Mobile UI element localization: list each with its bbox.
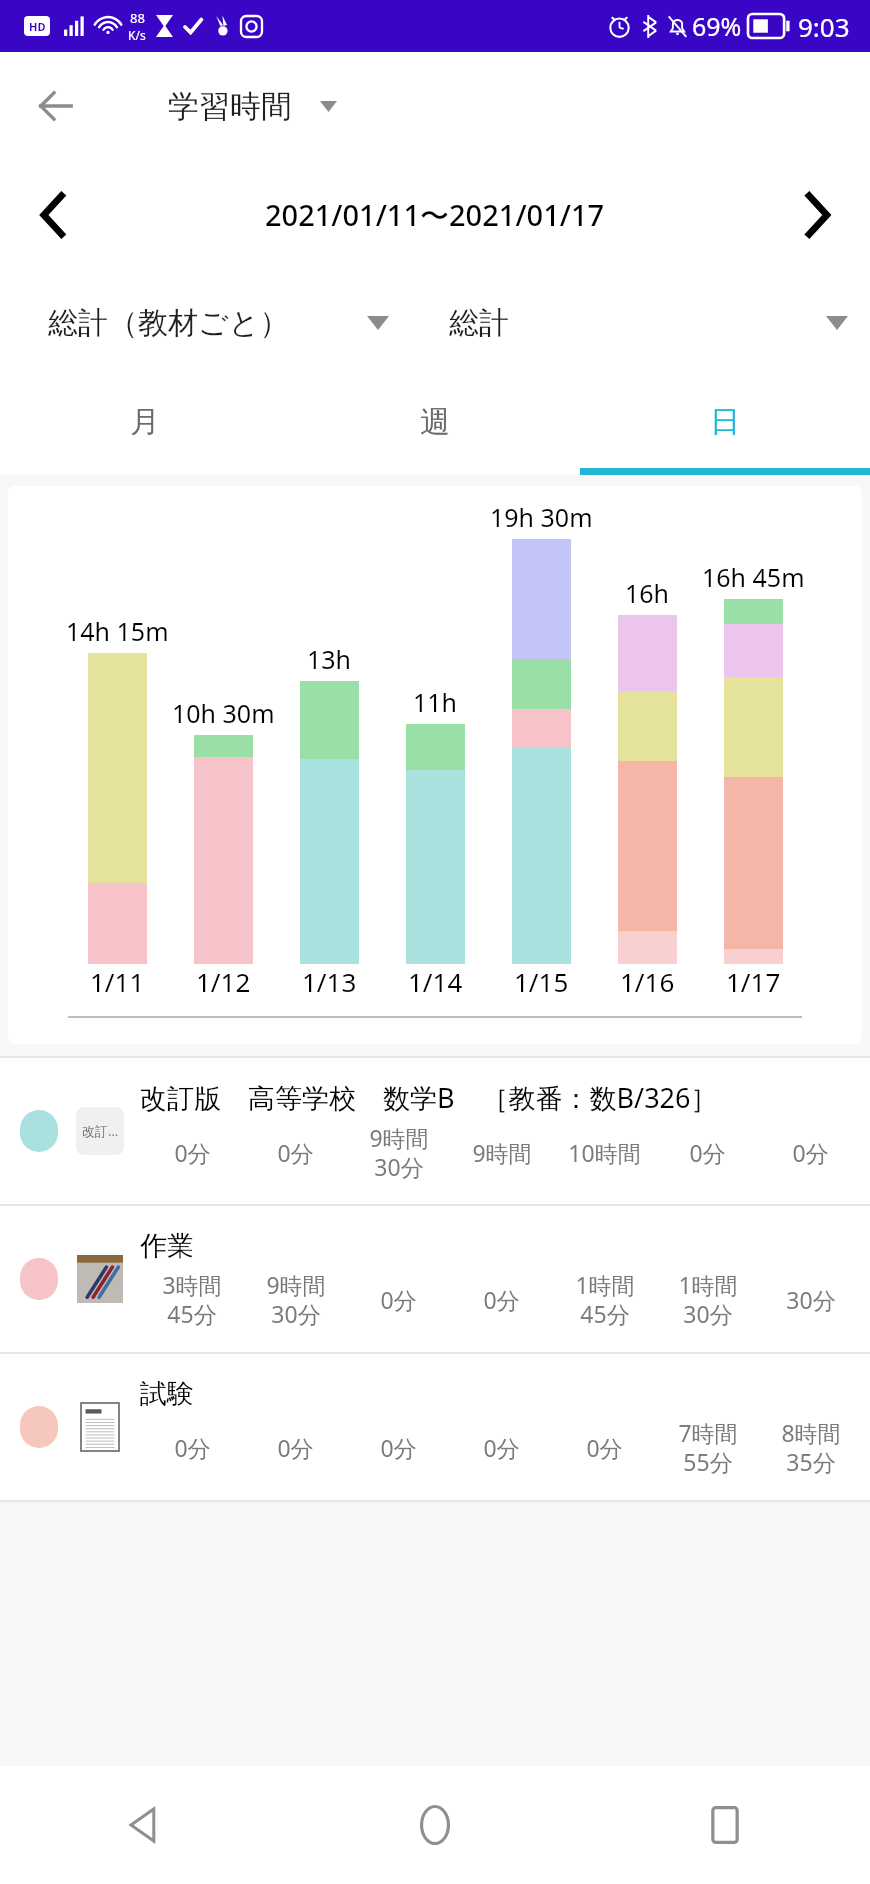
staticText: 0分 <box>586 1432 623 1463</box>
staticText: 1/11 <box>90 964 145 999</box>
staticText: 0分 <box>792 1137 829 1168</box>
staticText: 14h 15m <box>66 614 169 648</box>
staticText: 3時間 45分 <box>162 1269 222 1330</box>
staticText: 0分 <box>380 1432 417 1463</box>
staticText: 88 <box>130 9 145 27</box>
staticText: 作業 <box>140 1229 194 1263</box>
staticText: 1/15 <box>514 964 569 999</box>
staticText: 11h <box>413 685 458 719</box>
button[interactable]: Recent apps <box>580 1766 870 1884</box>
staticText: 0分 <box>277 1137 314 1168</box>
staticText: 69% <box>692 9 742 43</box>
staticText: 月 <box>130 403 160 441</box>
button[interactable]: 試験 <box>0 1354 870 1500</box>
button[interactable]: 総計（教材ごと） <box>0 270 435 376</box>
button[interactable]: Back <box>0 1766 290 1884</box>
staticText: 総計 <box>449 304 509 342</box>
staticText: 学習時間 <box>168 87 292 126</box>
staticText: 9:03 <box>798 9 850 44</box>
staticText: 1/17 <box>726 964 781 999</box>
staticText: 0分 <box>277 1432 314 1463</box>
staticText: 0分 <box>174 1432 211 1463</box>
staticText: HD <box>29 19 46 34</box>
staticText: 0分 <box>174 1137 211 1168</box>
staticText: 1時間 30分 <box>678 1269 738 1330</box>
staticText: 16h <box>625 576 670 610</box>
staticText: 試験 <box>140 1377 194 1411</box>
staticText: 改訂… <box>82 1122 119 1140</box>
button[interactable]: Home <box>290 1766 580 1884</box>
staticText: 13h <box>307 642 352 676</box>
staticText: 30分 <box>786 1284 836 1315</box>
button[interactable]: 週 <box>290 376 580 468</box>
staticText: 16h 45m <box>702 560 805 594</box>
button[interactable]: Next week <box>780 177 856 253</box>
staticText: 1/16 <box>620 964 675 999</box>
button[interactable]: 日 <box>580 376 870 468</box>
staticText: 7時間 55分 <box>678 1417 738 1478</box>
staticText: 1/12 <box>196 964 251 999</box>
staticText: 改訂版 高等学校 数学B ［教番：数B/326］ <box>140 1079 718 1116</box>
staticText: 2021/01/11〜2021/01/17 <box>265 195 605 235</box>
staticText: 0分 <box>483 1432 520 1463</box>
staticText: 総計（教材ごと） <box>48 304 290 342</box>
staticText: 9時間 <box>472 1137 532 1168</box>
staticText: 週 <box>420 403 450 441</box>
staticText: 19h 30m <box>490 500 593 534</box>
staticText: 1/13 <box>302 964 357 999</box>
staticText: 1時間 45分 <box>575 1269 635 1330</box>
button[interactable]: Previous week <box>14 177 90 253</box>
staticText: 0分 <box>483 1284 520 1315</box>
button[interactable]: 作業 <box>0 1206 870 1352</box>
button[interactable]: 学習時間 <box>168 87 337 126</box>
button[interactable]: 総計 <box>435 270 870 376</box>
button[interactable]: Back <box>22 72 90 140</box>
staticText: 9時間 30分 <box>266 1269 326 1330</box>
staticText: 8時間 35分 <box>781 1417 841 1478</box>
button[interactable]: 月 <box>0 376 290 468</box>
staticText: 10時間 <box>568 1137 641 1168</box>
staticText: 0分 <box>380 1284 417 1315</box>
button[interactable]: 改訂… <box>0 1058 870 1204</box>
staticText: 1/14 <box>408 964 463 999</box>
staticText: 日 <box>710 403 740 441</box>
staticText: K/s <box>128 27 146 43</box>
staticText: 10h 30m <box>172 696 275 730</box>
staticText: 0分 <box>689 1137 726 1168</box>
staticText: 9時間 30分 <box>369 1122 429 1183</box>
